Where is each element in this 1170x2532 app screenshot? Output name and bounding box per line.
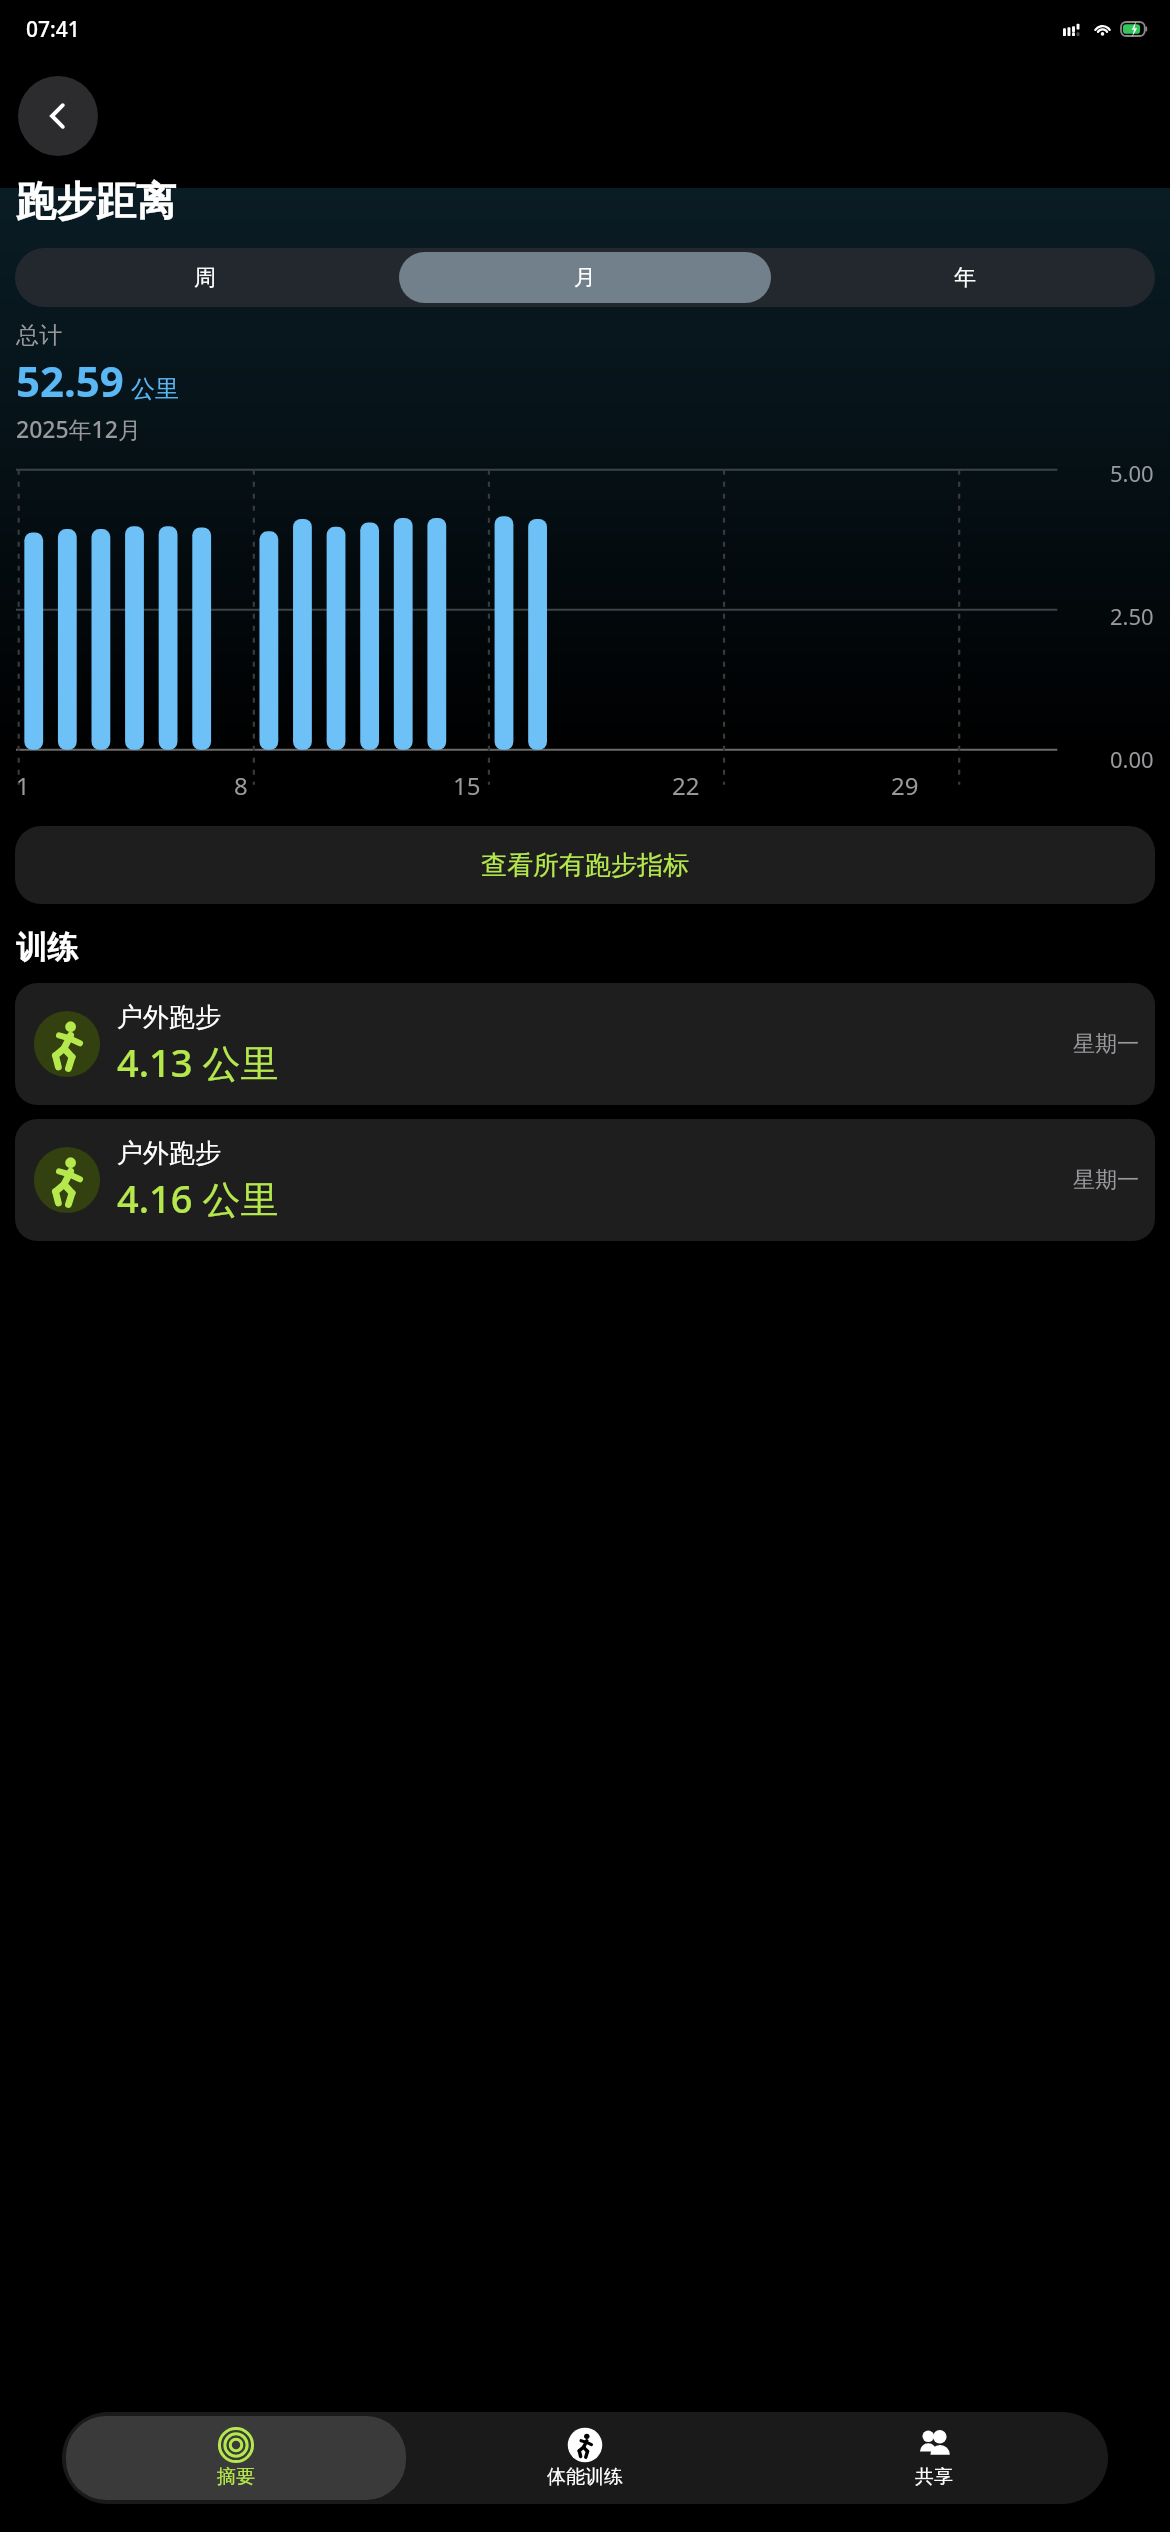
staticText: 22 [672,769,700,802]
staticText: 训练 [16,928,78,967]
staticText: 4.16 公里 [117,1172,279,1224]
button[interactable]: 年 [779,252,1151,303]
staticText: 年 [954,264,976,292]
button[interactable]: 户外跑步 [15,1119,1155,1241]
staticText: 体能训练 [547,2465,623,2489]
button[interactable]: 户外跑步 [15,983,1155,1105]
button[interactable]: 返回 [18,76,98,156]
staticText: 户外跑步 [117,1137,221,1170]
staticText: 29 [891,769,919,802]
staticText: 摘要 [217,2465,255,2489]
staticText: 2025年12月 [16,413,141,444]
staticText: 15 [453,769,481,802]
staticText: 共享 [915,2465,953,2489]
staticText: 5.00 [1110,458,1154,488]
staticText: 07:41 [26,15,80,44]
button[interactable]: 周 [19,252,391,303]
staticText: 户外跑步 [117,1001,221,1034]
staticText: 星期一 [1073,1166,1139,1194]
staticText: 查看所有跑步指标 [481,849,689,882]
button[interactable]: 摘要 [66,2416,406,2500]
button[interactable]: 共享 [759,2412,1108,2504]
button[interactable]: 月 [399,252,771,303]
staticText: 4.13 公里 [117,1036,279,1088]
staticText: 总计 [16,321,62,350]
staticText: 2.50 [1110,601,1154,631]
staticText: 52.59 [16,352,124,409]
staticText: 周 [194,264,216,292]
staticText: 0.00 [1110,744,1154,774]
button[interactable]: 体能训练 [410,2412,759,2504]
staticText: 8 [234,769,248,802]
button[interactable]: 查看所有跑步指标 [15,826,1155,904]
staticText: 公里 [131,374,179,404]
staticText: 1 [16,769,30,802]
staticText: 跑步距离 [16,176,176,226]
staticText: 星期一 [1073,1030,1139,1058]
staticText: 月 [574,264,596,292]
